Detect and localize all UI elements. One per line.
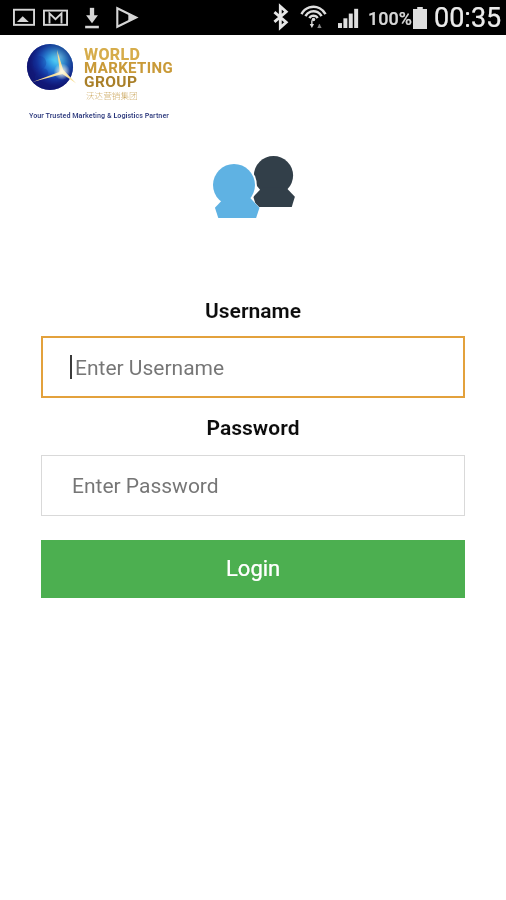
staticText: 沃达营销集团	[86, 89, 138, 101]
staticText: 00:35	[434, 2, 502, 34]
staticText: Enter Password	[72, 474, 219, 499]
button[interactable]: Login	[41, 540, 465, 598]
staticText: MARKETING	[84, 59, 174, 77]
staticText: Username	[0, 299, 506, 324]
button[interactable]: Enter Password	[41, 455, 465, 516]
button[interactable]: Enter Username	[41, 336, 465, 398]
other: Users	[206, 150, 304, 226]
staticText: Enter Username	[75, 356, 225, 381]
staticText: Your Trusted Marketing & Logistics Partn…	[29, 111, 169, 119]
staticText: 100%	[368, 8, 412, 29]
staticText: Password	[0, 416, 506, 441]
staticText: GROUP	[84, 73, 138, 91]
staticText: Login	[226, 556, 281, 582]
staticText: WORLD	[84, 45, 141, 64]
